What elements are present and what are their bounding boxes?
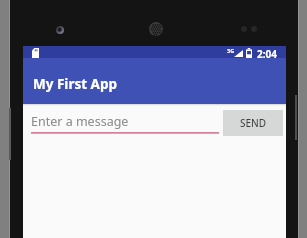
staticText: My First App [33, 75, 117, 93]
staticText: 3G [227, 47, 235, 54]
staticText: Enter a message [31, 113, 129, 130]
staticText: SEND [240, 116, 267, 130]
button[interactable]: Enter a message [31, 107, 219, 134]
button[interactable]: SEND [223, 110, 283, 136]
staticText: 2:04 [257, 47, 277, 59]
